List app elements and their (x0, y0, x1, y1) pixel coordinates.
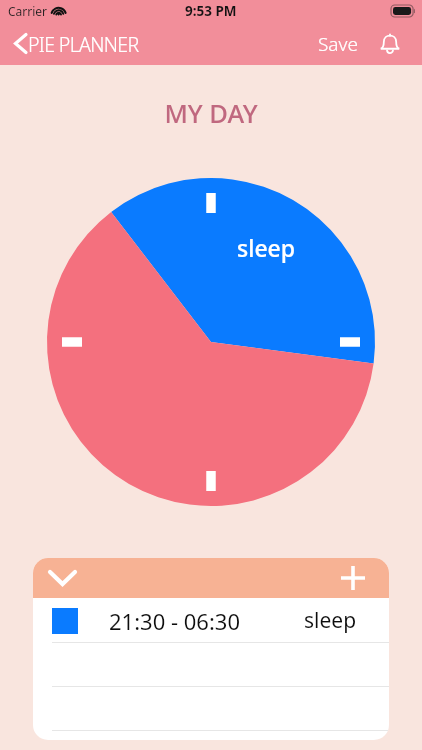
button[interactable]: Collapse (33, 564, 87, 592)
staticText: PIE PLANNER (28, 31, 139, 58)
staticText: sleep (304, 606, 357, 635)
staticText: sleep (237, 232, 296, 263)
staticText: Save (318, 31, 358, 57)
button[interactable]: Notifications (376, 27, 422, 61)
staticText: Carrier (8, 3, 48, 19)
staticText: 9:53 PM (185, 2, 237, 20)
button[interactable]: Save (310, 25, 373, 63)
staticText: 21:30 - 06:30 (109, 606, 240, 636)
button[interactable] (33, 643, 389, 687)
button[interactable]: Add (331, 562, 389, 594)
button[interactable] (33, 687, 389, 731)
button[interactable]: PIE PLANNER (0, 24, 149, 63)
button[interactable]: 21:30 - 06:30 (33, 598, 389, 643)
staticText: MY DAY (0, 96, 422, 131)
